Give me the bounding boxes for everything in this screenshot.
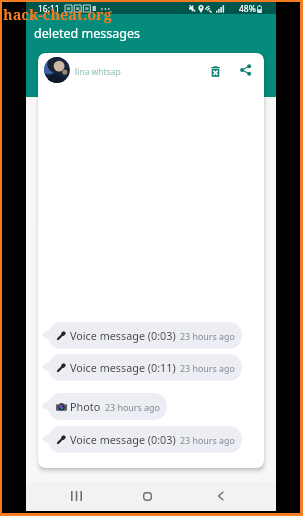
staticText: hack-cheat.org (3, 4, 112, 24)
staticText: Voice message (0:03) (70, 328, 176, 343)
button[interactable]: Photo (48, 393, 167, 420)
staticText: 23 hours ago (180, 362, 235, 374)
button[interactable]: Voice message (0:03) (48, 322, 242, 349)
staticText: 48% (239, 3, 256, 15)
button[interactable]: Home (134, 483, 160, 509)
button[interactable]: Voice message (0:03) (48, 426, 242, 453)
button[interactable]: Back (208, 483, 234, 509)
staticText: 23 hours ago (180, 434, 235, 446)
staticText: deleted messages (34, 25, 140, 42)
staticText: lina whtsap (75, 66, 121, 78)
button[interactable]: Delete (206, 62, 224, 80)
staticText: Voice message (0:03) (70, 432, 176, 447)
staticText: 23 hours ago (105, 401, 160, 413)
staticText: Photo (70, 399, 101, 414)
staticText: 23 hours ago (180, 330, 235, 342)
staticText: 16:11 (38, 3, 60, 15)
staticText: Voice message (0:11) (70, 360, 176, 375)
button[interactable]: Recents (63, 483, 89, 509)
button[interactable]: Voice message (0:11) (48, 354, 242, 381)
button[interactable]: Share (236, 61, 254, 79)
